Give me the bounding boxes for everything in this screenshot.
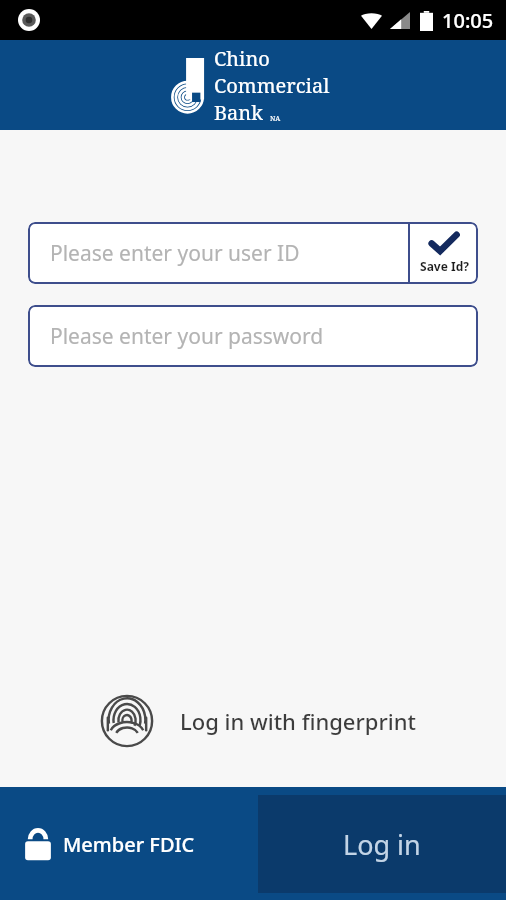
staticText: Commercial	[214, 72, 330, 99]
staticText: Bank	[214, 99, 263, 126]
staticText: Save Id?	[420, 258, 469, 274]
button[interactable]: Member FDIC	[20, 823, 199, 865]
staticText: Chino	[214, 45, 270, 72]
staticText: NA	[270, 114, 281, 124]
button[interactable]: Save Id	[410, 222, 478, 284]
button[interactable]: Please enter your user ID	[28, 222, 408, 284]
staticText: Please enter your password	[50, 322, 324, 351]
button[interactable]: Log in with fingerprint	[96, 690, 420, 752]
button[interactable]: Log in	[258, 795, 506, 893]
button[interactable]: Please enter your password	[28, 305, 478, 367]
staticText: Log in with fingerprint	[180, 706, 416, 736]
staticText: 10:05	[442, 7, 494, 34]
staticText: Log in	[343, 826, 421, 863]
staticText: Member FDIC	[63, 831, 195, 858]
staticText: Please enter your user ID	[50, 239, 300, 268]
